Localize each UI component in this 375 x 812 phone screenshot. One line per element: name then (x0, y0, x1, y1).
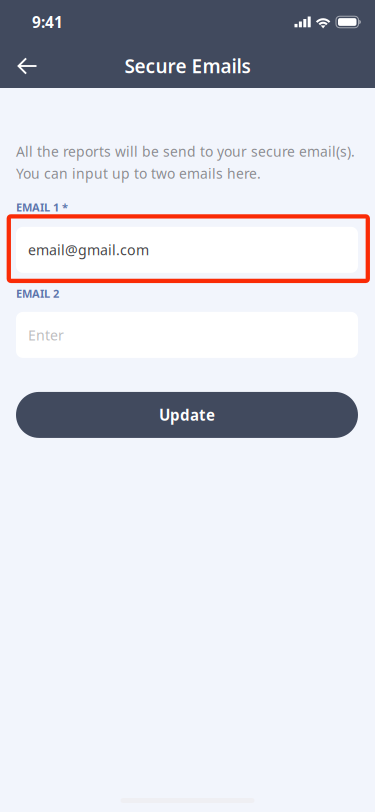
staticText: Enter (28, 325, 64, 344)
button[interactable]: email@gmail.com (16, 227, 358, 273)
staticText: Secure Emails (124, 53, 250, 79)
button[interactable]: Back (0, 44, 55, 88)
staticText: All the reports will be send to your sec… (16, 142, 355, 161)
staticText: 9:41 (32, 11, 63, 33)
staticText: EMAIL 2 (16, 286, 59, 301)
button[interactable]: Enter (16, 312, 358, 358)
staticText: You can input up to two emails here. (16, 164, 261, 183)
staticText: EMAIL 1 * (16, 200, 68, 215)
staticText: email@gmail.com (28, 240, 149, 259)
staticText: Update (159, 405, 215, 425)
button[interactable]: Update (16, 392, 358, 438)
